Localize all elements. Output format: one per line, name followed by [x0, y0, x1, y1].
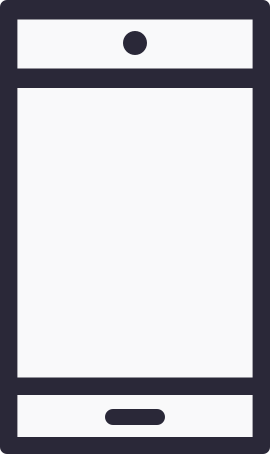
button[interactable]: Smartphone: [0, 0, 270, 454]
